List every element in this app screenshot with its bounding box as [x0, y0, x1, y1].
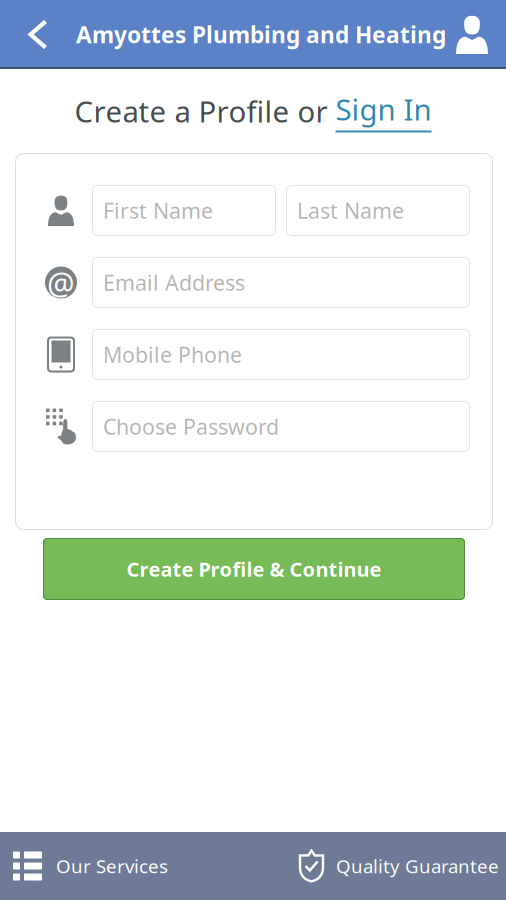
button[interactable]: Sign In — [335, 89, 431, 132]
staticText: Create Profile & Continue — [126, 556, 381, 582]
button[interactable]: Account — [456, 0, 506, 69]
button[interactable]: Back — [0, 0, 76, 69]
staticText: Our Services — [56, 854, 168, 878]
button[interactable]: Quality Guarantee — [253, 832, 506, 900]
staticText: @ — [47, 262, 75, 303]
button[interactable]: Our Services — [0, 832, 253, 900]
staticText: Quality Guarantee — [336, 854, 499, 878]
staticText: Create a Profile or — [74, 91, 335, 130]
staticText: Mobile Phone — [103, 340, 242, 369]
button[interactable]: Create Profile & Continue — [43, 538, 465, 600]
staticText: Email Address — [103, 268, 245, 297]
staticText: First Name — [103, 196, 213, 225]
staticText: Last Name — [297, 196, 404, 225]
staticText: Amyottes Plumbing and Heating — [76, 19, 446, 49]
staticText: Choose Password — [103, 412, 279, 441]
staticText: Sign In — [335, 89, 431, 128]
